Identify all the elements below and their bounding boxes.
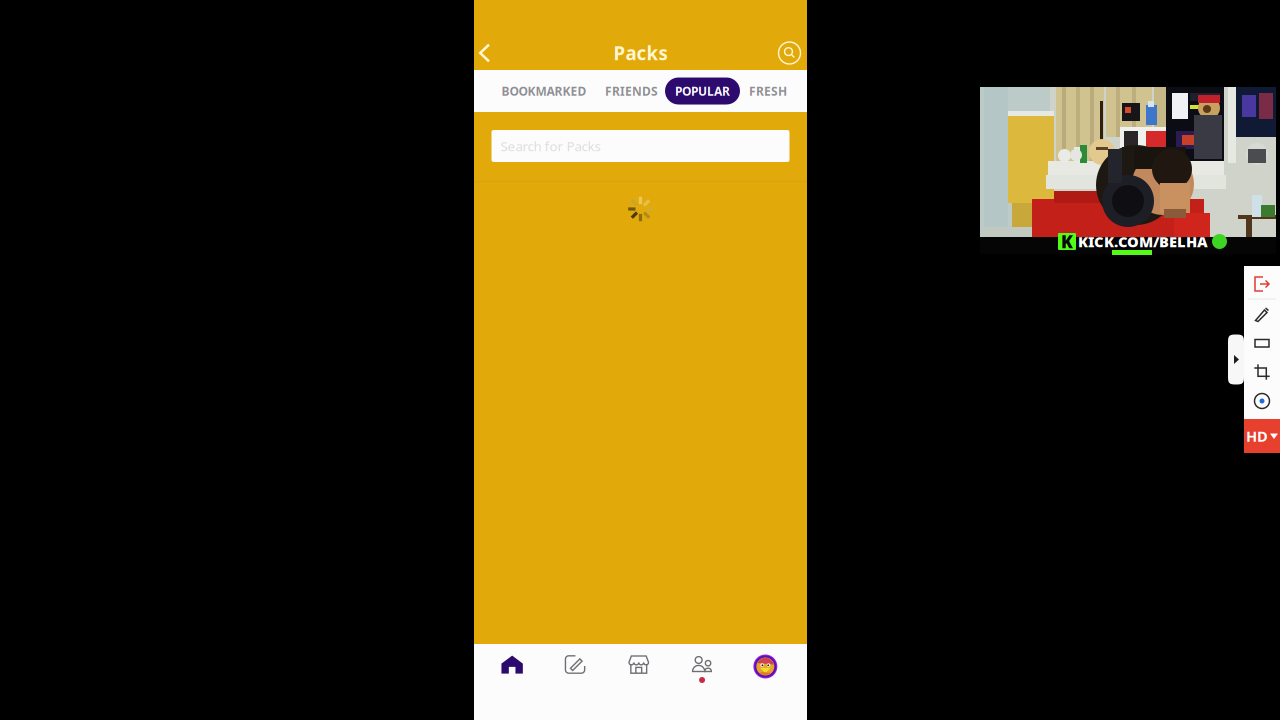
button[interactable]: Friends [670,644,734,686]
button[interactable]: Home [480,644,544,686]
staticText: K [1061,230,1073,253]
button[interactable]: Back [468,37,501,69]
button[interactable]: Crop [1244,357,1280,386]
button[interactable]: Search for Packs [491,130,789,162]
button[interactable]: Rectangle [1244,328,1280,357]
staticText: POPULAR [675,83,730,99]
button[interactable]: Draw [1244,299,1280,328]
button[interactable]: POPULAR [665,77,740,104]
button[interactable]: Compose [544,644,607,686]
button[interactable]: Search [773,37,806,69]
staticText: Packs [613,41,667,65]
staticText: HD [1246,426,1268,446]
staticText: KICK.COM/BELHA [1078,232,1208,251]
button[interactable]: Quality HD [1244,419,1280,453]
staticText: FRESH [749,83,787,99]
button[interactable]: Record [1244,386,1280,415]
button[interactable]: BOOKMARKED [499,81,589,101]
staticText: FRIENDS [605,83,658,99]
button[interactable]: Collapse toolbar [1228,334,1244,384]
button[interactable]: FRIENDS [605,81,658,101]
button[interactable]: FRESH [745,81,791,101]
button[interactable]: Export [1244,269,1280,298]
button[interactable]: Store [607,644,670,686]
staticText: Search for Packs [500,137,600,155]
button[interactable]: Profile [734,644,797,686]
staticText: BOOKMARKED [501,83,586,99]
